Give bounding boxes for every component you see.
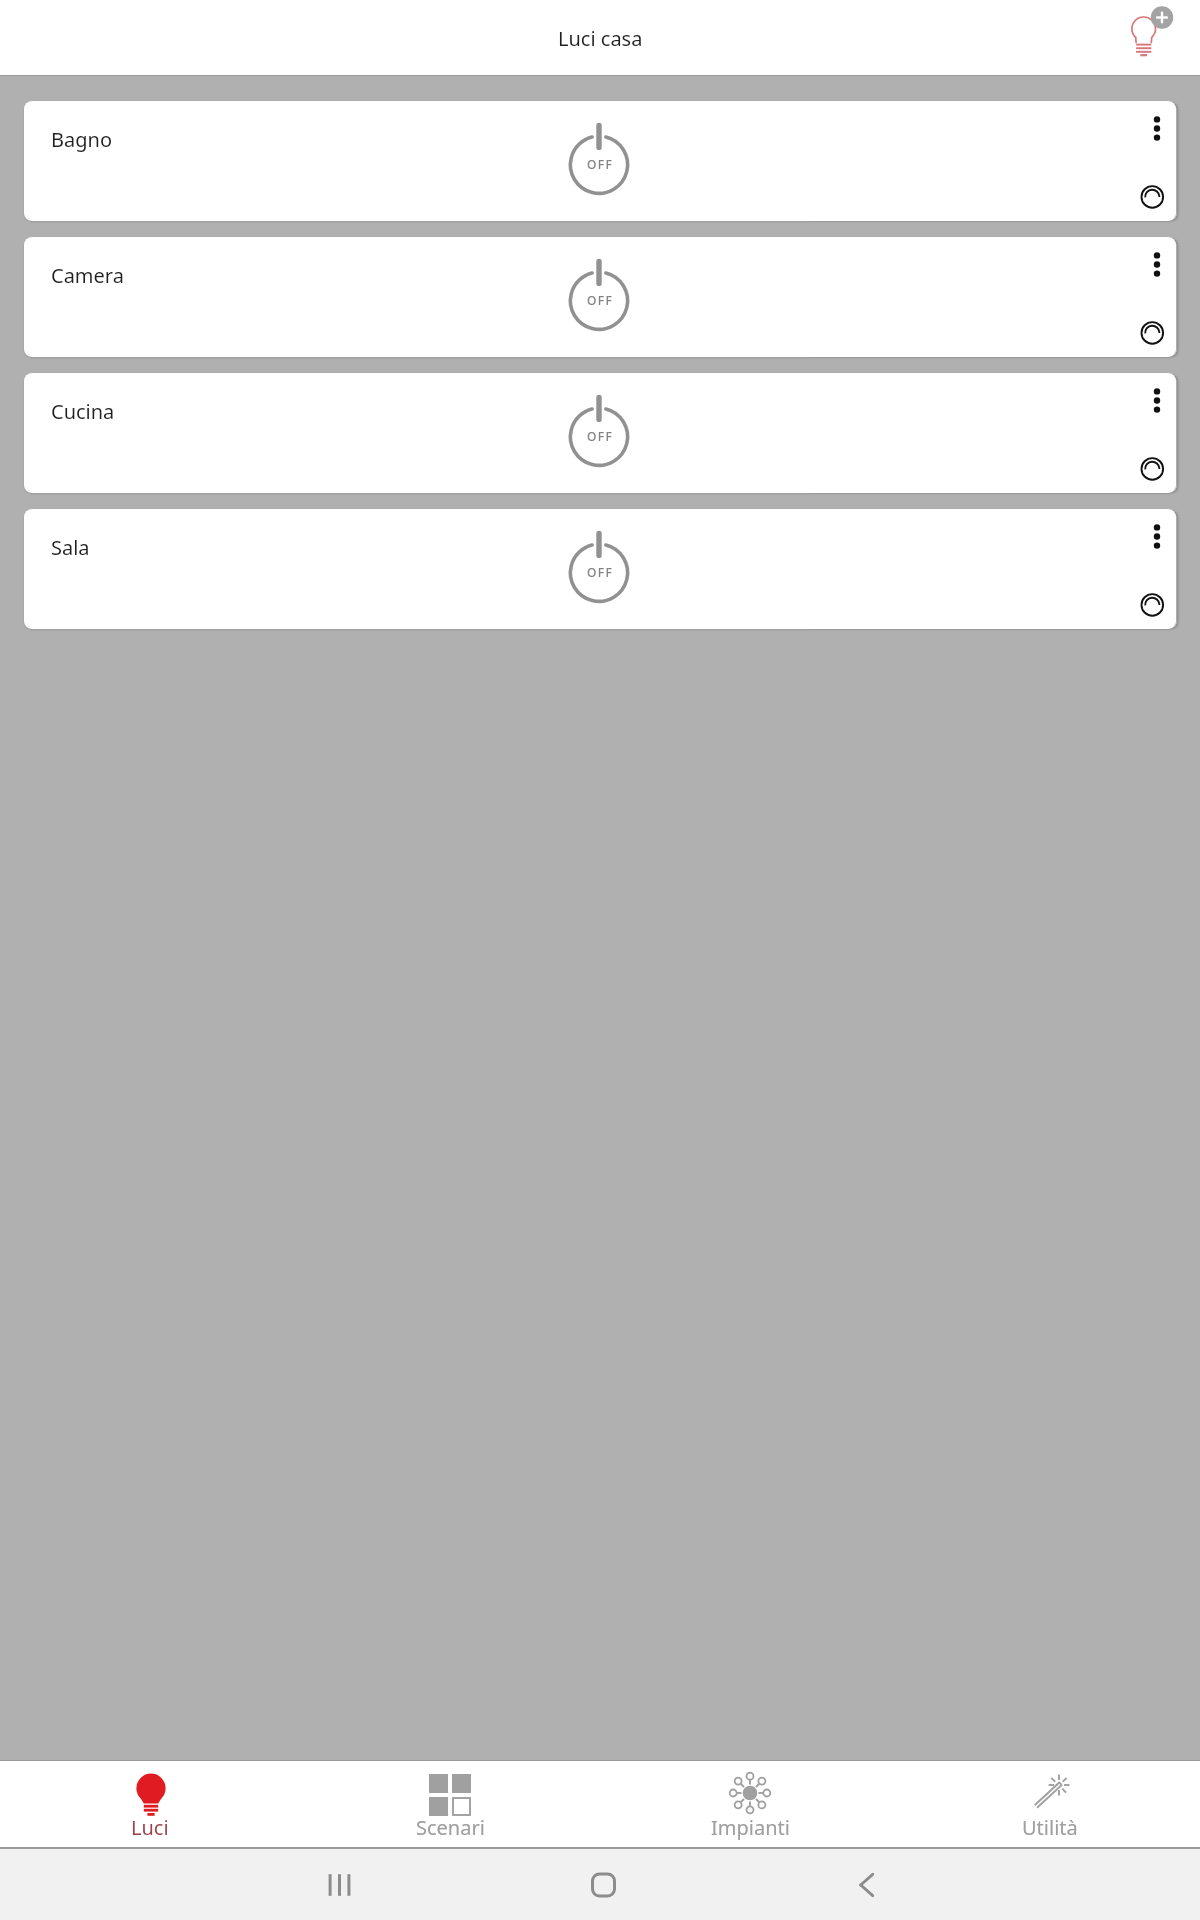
staticText: Utilità <box>1022 1814 1078 1841</box>
button[interactable]: Regola intensità <box>1124 577 1176 629</box>
button[interactable]: Aggiungi luce <box>1114 0 1180 62</box>
button[interactable]: Regola intensità <box>1124 169 1176 221</box>
button[interactable]: Altre opzioni <box>1129 373 1176 429</box>
button[interactable]: Accendi Sala <box>555 526 643 614</box>
button[interactable]: Recenti <box>304 1849 376 1920</box>
button[interactable]: Impianti <box>600 1761 900 1847</box>
staticText: Impianti <box>711 1814 790 1841</box>
button[interactable]: Camera <box>24 237 1176 357</box>
staticText: Bagno <box>51 126 112 153</box>
staticText: Camera <box>51 262 124 289</box>
staticText: Luci <box>131 1814 169 1841</box>
button[interactable]: Utilità <box>900 1761 1200 1847</box>
button[interactable]: Bagno <box>24 101 1176 221</box>
staticText: OFF <box>587 428 614 444</box>
button[interactable]: Accendi Camera <box>555 254 643 342</box>
staticText: OFF <box>587 156 614 172</box>
button[interactable]: Regola intensità <box>1124 305 1176 357</box>
staticText: OFF <box>587 292 614 308</box>
button[interactable]: Indietro <box>831 1849 903 1920</box>
staticText: Cucina <box>51 398 115 425</box>
button[interactable]: Altre opzioni <box>1129 237 1176 293</box>
button[interactable]: Sala <box>24 509 1176 629</box>
staticText: Luci casa <box>558 25 643 52</box>
button[interactable]: Scenari <box>300 1761 600 1847</box>
button[interactable]: Accendi Bagno <box>555 118 643 206</box>
button[interactable]: Cucina <box>24 373 1176 493</box>
staticText: OFF <box>587 564 614 580</box>
button[interactable]: Altre opzioni <box>1129 509 1176 565</box>
button[interactable]: Home <box>568 1849 640 1920</box>
button[interactable]: Regola intensità <box>1124 441 1176 493</box>
button[interactable]: Accendi Cucina <box>555 390 643 478</box>
button[interactable]: Altre opzioni <box>1129 101 1176 157</box>
staticText: Scenari <box>416 1814 485 1841</box>
staticText: Sala <box>51 534 90 561</box>
button[interactable]: Luci <box>0 1761 300 1847</box>
